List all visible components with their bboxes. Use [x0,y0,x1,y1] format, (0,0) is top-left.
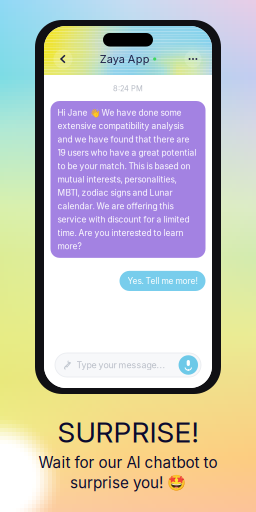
staticText: Zaya App [100,52,150,66]
staticText: 8:24 PM [113,84,143,93]
staticText: surprise you! 🤩 [70,474,186,492]
staticText: Yes. Tell me more! [127,276,197,286]
staticText: Hi Jane 👋 We have done some extensive co… [57,107,196,251]
staticText: Wait for our AI chatbot to [38,453,217,472]
button[interactable]: Record voice message [178,354,199,375]
button[interactable]: More options [181,47,205,71]
button[interactable]: Back [51,47,75,71]
staticText: Type your message... [76,360,165,370]
staticText: SURPRISE! [57,415,198,449]
